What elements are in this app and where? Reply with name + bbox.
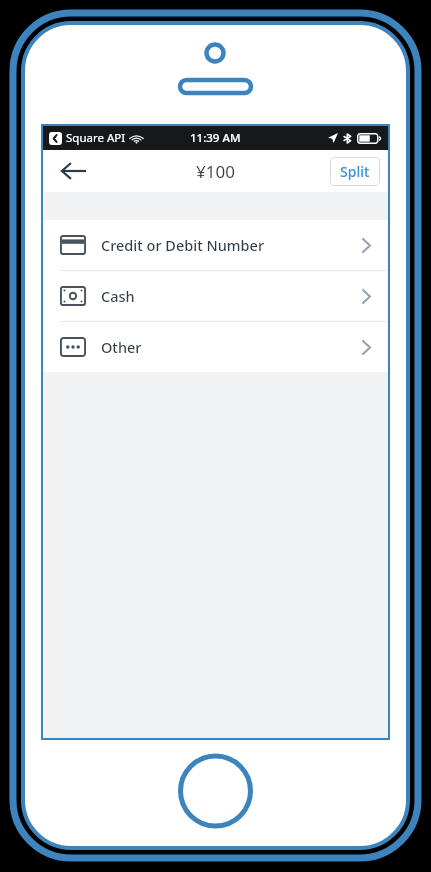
button[interactable]: Credit or Debit Number: [43, 220, 388, 271]
staticText: Square API: [66, 130, 126, 146]
button[interactable]: Other: [43, 322, 388, 372]
staticText: Cash: [101, 286, 135, 306]
staticText: ¥100: [196, 160, 235, 183]
button[interactable]: Back: [53, 151, 93, 191]
button[interactable]: Cash: [43, 271, 388, 322]
button[interactable]: Split: [330, 157, 380, 186]
staticText: Credit or Debit Number: [101, 235, 265, 255]
staticText: 11:39 AM: [190, 130, 241, 146]
staticText: Other: [101, 337, 142, 357]
staticText: Split: [340, 162, 370, 181]
